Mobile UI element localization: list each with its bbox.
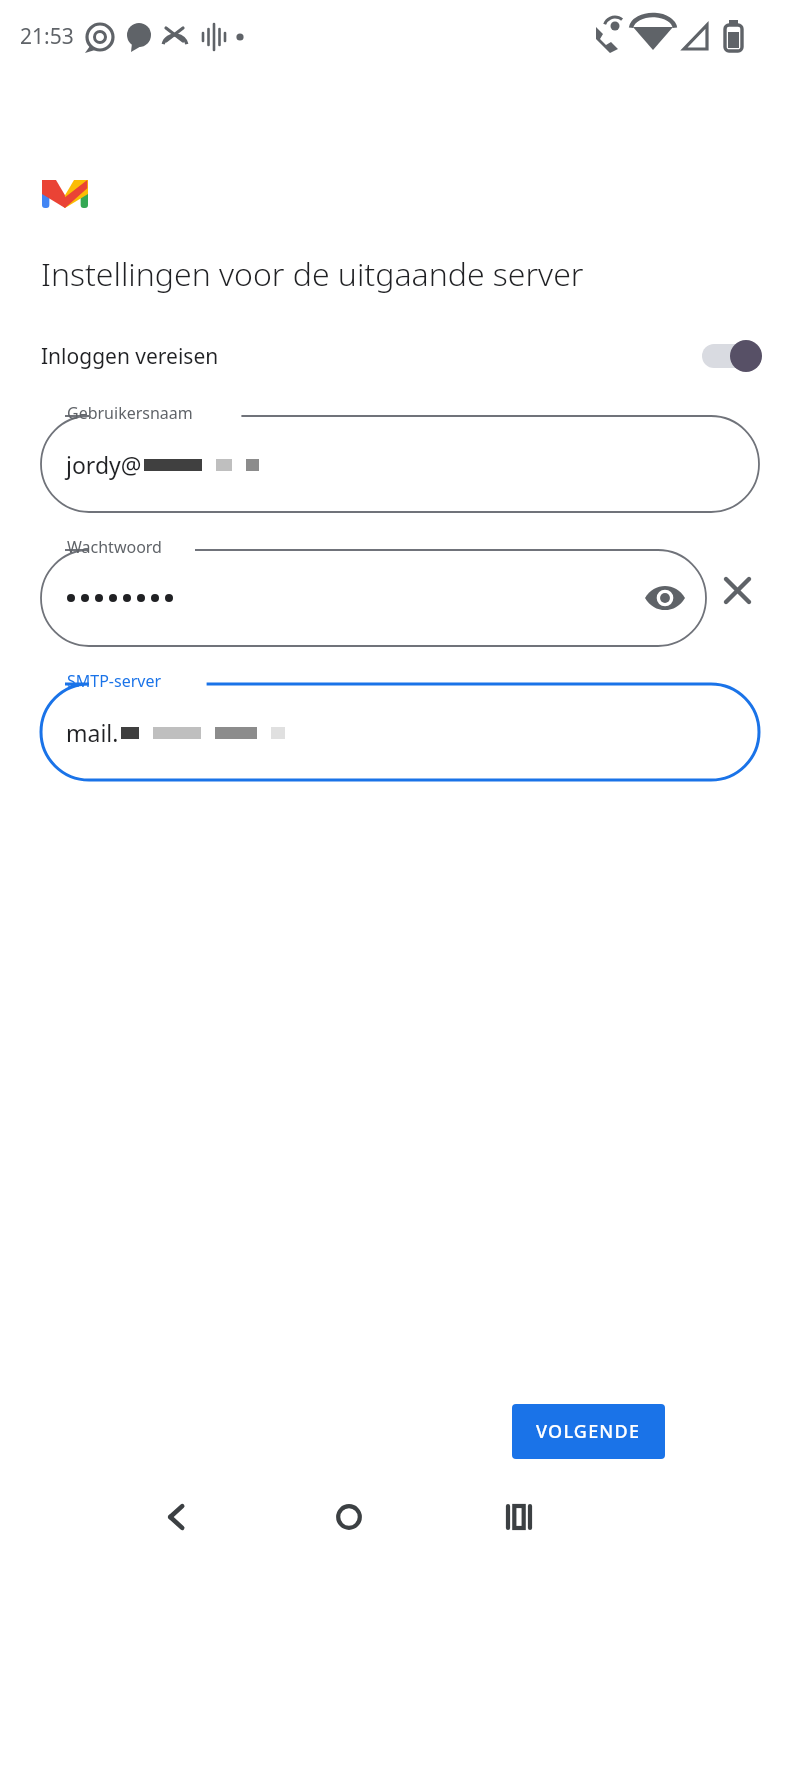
button[interactable]: SMTP-server	[41, 668, 759, 780]
button[interactable]: Wachtwoord	[41, 534, 706, 646]
staticText: mail.	[66, 717, 119, 748]
button[interactable]: Recente apps	[494, 1492, 544, 1542]
button[interactable]: Wachtwoord tonen	[638, 571, 692, 625]
other: Inloggen vereisen	[702, 340, 762, 372]
button[interactable]: Wissen	[706, 559, 768, 621]
staticText: SMTP-server	[67, 670, 162, 692]
button[interactable]: Home	[324, 1492, 374, 1542]
button[interactable]: Inloggen vereisen	[0, 324, 800, 388]
button[interactable]: Terug	[152, 1492, 202, 1542]
button[interactable]: Gebruikersnaam	[41, 400, 759, 512]
staticText: Gebruikersnaam	[67, 402, 193, 424]
button[interactable]: VOLGENDE	[512, 1404, 665, 1459]
staticText: 21:53	[20, 22, 74, 51]
staticText: jordy@	[66, 449, 142, 480]
staticText: Wachtwoord	[67, 536, 162, 558]
staticText: Instellingen voor de uitgaande server	[41, 252, 584, 296]
staticText: Inloggen vereisen	[41, 342, 219, 371]
staticText: VOLGENDE	[536, 1419, 641, 1444]
